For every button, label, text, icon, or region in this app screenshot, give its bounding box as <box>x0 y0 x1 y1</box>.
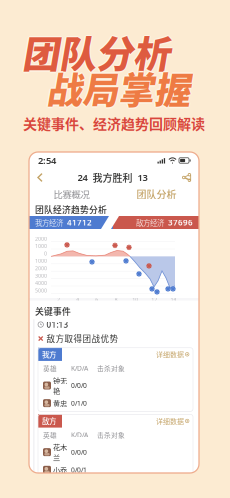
staticText: 37696 <box>168 217 193 228</box>
staticText: 01:13 <box>46 319 68 330</box>
staticText: 2:54 <box>38 154 56 167</box>
staticText: 我方经济 <box>35 217 63 228</box>
staticText: 击杀对象 <box>97 363 125 373</box>
staticText: 关键事件、经济趋势回顾解读 <box>23 113 205 133</box>
button[interactable]: Share <box>177 170 196 185</box>
staticText: 团队分析 <box>28 25 176 79</box>
staticText: 41712 <box>67 217 92 228</box>
staticText: 战局掌握 <box>54 62 198 114</box>
staticText: 团队分析 <box>30 25 178 79</box>
staticText: 24 <box>77 171 87 184</box>
staticText: 8 <box>114 296 117 303</box>
staticText: 0/0/0 <box>71 381 87 390</box>
staticText: 6 <box>95 296 98 303</box>
staticText: 4 <box>76 296 79 303</box>
staticText: 0/0/0 <box>71 448 87 457</box>
button[interactable]: 团队分析 <box>114 185 199 203</box>
staticText: 战局掌握 <box>53 61 197 113</box>
staticText: 详细数据 <box>156 349 184 359</box>
staticText: 敌方经济 <box>136 217 164 228</box>
staticText: K/D/A <box>71 430 88 439</box>
button[interactable]: 详细数据 <box>156 414 193 427</box>
staticText: 1000 <box>35 242 47 250</box>
staticText: 团队分析 <box>29 26 177 80</box>
button[interactable]: 详细数据 <box>156 348 193 361</box>
staticText: 详细数据 <box>156 416 184 426</box>
staticText: 我方 <box>42 349 56 360</box>
staticText: 我方胜利 <box>92 170 132 185</box>
staticText: 2000 <box>35 235 47 242</box>
staticText: 团队经济趋势分析 <box>35 203 107 216</box>
staticText: 击杀对象 <box>97 430 125 440</box>
staticText: 英雄 <box>43 430 57 440</box>
staticText: 战局掌握 <box>53 62 197 114</box>
staticText: 团队分析 <box>136 187 176 201</box>
staticText: 钟无艳 <box>53 375 67 396</box>
staticText: 比赛概况 <box>53 187 89 201</box>
staticText: 团队分析 <box>29 24 177 78</box>
button[interactable]: Back <box>32 170 48 185</box>
staticText: 团队分析 <box>29 25 177 79</box>
staticText: 敌方 <box>42 416 56 426</box>
staticText: 4000 <box>35 279 47 287</box>
staticText: 战局掌握 <box>52 62 196 114</box>
staticText: 花木兰 <box>53 442 67 463</box>
staticText: 0/0/1 <box>71 465 87 474</box>
staticText: 关键事件 <box>35 304 71 317</box>
staticText: 敌方取得团战优势 <box>46 332 118 345</box>
staticText: 0/1/0 <box>71 399 87 408</box>
staticText: 10 <box>132 296 138 303</box>
staticText: 13 <box>137 171 147 184</box>
staticText: 2 <box>57 296 60 303</box>
staticText: K/D/A <box>71 364 88 373</box>
staticText: 英雄 <box>43 363 57 373</box>
staticText: 1000 <box>35 257 47 264</box>
staticText: 2000 <box>35 265 47 272</box>
staticText: 12 <box>151 296 157 303</box>
staticText: 小乔 <box>53 465 67 475</box>
staticText: 5000 <box>35 287 47 294</box>
staticText: 黄忠 <box>53 398 67 408</box>
button[interactable]: 比赛概况 <box>29 185 114 203</box>
staticText: 3000 <box>35 272 47 279</box>
staticText: 0 <box>44 250 47 257</box>
staticText: 战局掌握 <box>53 63 197 115</box>
staticText: 14 <box>170 296 176 303</box>
